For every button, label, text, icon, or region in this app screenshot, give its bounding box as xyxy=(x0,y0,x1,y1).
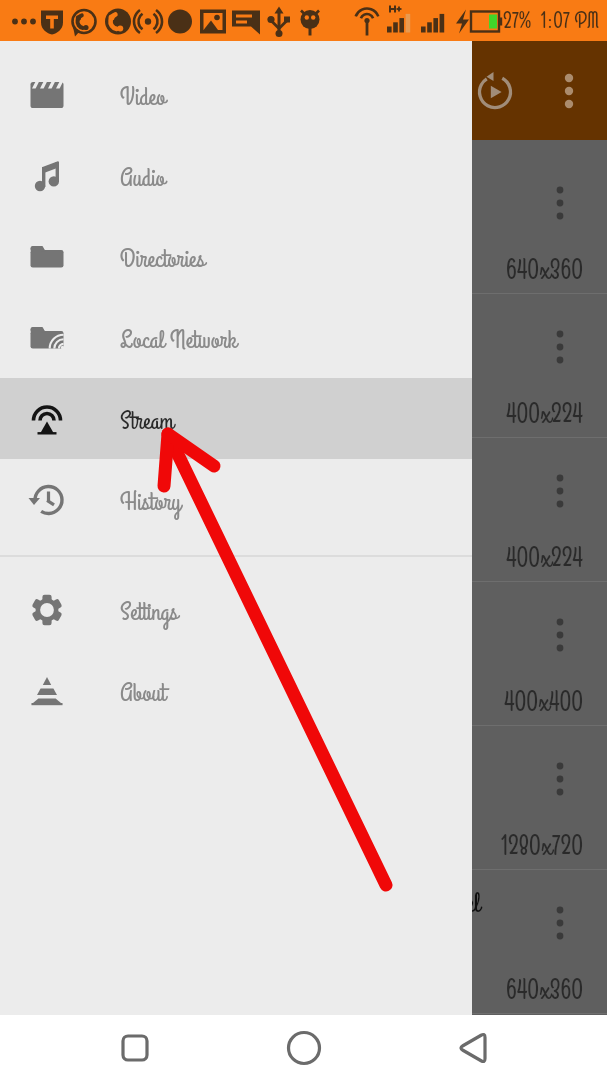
button[interactable]: More options xyxy=(544,331,576,363)
staticText: Local Network xyxy=(120,323,237,358)
staticText: 1280x720 xyxy=(501,828,583,865)
button[interactable]: Settings xyxy=(0,569,472,650)
staticText: 640x360 xyxy=(506,972,583,1009)
button[interactable]: Stream xyxy=(0,378,472,459)
staticText: 400x400 xyxy=(504,684,583,721)
button[interactable]: History xyxy=(0,459,472,540)
button[interactable]: More options xyxy=(0,582,607,726)
staticText: Settings xyxy=(120,595,178,630)
button[interactable]: Recents xyxy=(105,1018,165,1078)
button[interactable]: Local Network xyxy=(0,297,472,378)
button[interactable]: Home xyxy=(274,1018,334,1078)
button[interactable]: Back xyxy=(442,1018,502,1078)
staticText: 400x224 xyxy=(506,540,583,577)
staticText: Stream xyxy=(120,404,174,439)
button[interactable]: Directories xyxy=(0,216,472,297)
button[interactable]: More options xyxy=(0,726,607,870)
button[interactable]: More options xyxy=(544,187,576,219)
button[interactable]: More options xyxy=(544,619,576,651)
button[interactable]: More options xyxy=(544,475,576,507)
button[interactable]: Resume playback xyxy=(469,65,521,117)
button[interactable]: More options xyxy=(0,294,607,438)
staticText: 27% 1:07 PM xyxy=(503,6,600,36)
staticText: History xyxy=(120,485,181,520)
staticText: Video xyxy=(120,80,166,115)
staticText: Directories xyxy=(120,242,205,277)
staticText: Audio xyxy=(120,161,166,196)
staticText: About xyxy=(120,676,166,711)
button[interactable]: Audio xyxy=(0,135,472,216)
button[interactable]: About xyxy=(0,650,472,731)
button[interactable]: Video xyxy=(0,54,472,135)
button[interactable]: More options xyxy=(0,150,607,294)
button[interactable]: el xyxy=(0,870,607,1014)
staticText: 400x224 xyxy=(506,396,583,433)
button[interactable]: Overflow menu xyxy=(545,67,593,115)
button[interactable]: More options xyxy=(544,907,576,939)
button[interactable]: More options xyxy=(0,438,607,582)
staticText: el xyxy=(466,885,480,922)
staticText: 640x360 xyxy=(506,252,583,289)
button[interactable]: More options xyxy=(544,763,576,795)
